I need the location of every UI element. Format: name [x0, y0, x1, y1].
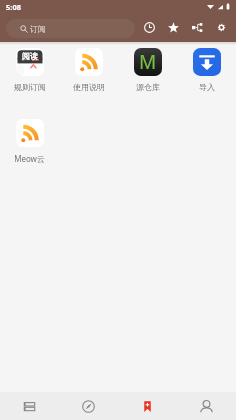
staticText: 源仓库	[136, 82, 160, 92]
staticText: M	[139, 49, 157, 75]
staticText: 导入	[199, 82, 215, 92]
button[interactable]: Settings	[209, 15, 233, 39]
staticText: 阅读	[22, 51, 38, 61]
button[interactable]: Favorites	[161, 15, 185, 39]
button[interactable]: 导入	[177, 42, 236, 113]
button[interactable]: Groups	[185, 15, 209, 39]
staticText: 订阅	[30, 24, 46, 34]
staticText: 使用说明	[73, 82, 105, 92]
button[interactable]: Bookshelf	[0, 392, 59, 420]
button[interactable]: Explore	[59, 392, 118, 420]
button[interactable]: Subscriptions	[118, 392, 177, 420]
staticText: Meow云	[14, 153, 45, 164]
button[interactable]: M	[118, 42, 177, 113]
staticText: 规则订阅	[14, 82, 46, 92]
button[interactable]: Profile	[177, 392, 236, 420]
button[interactable]: History	[137, 15, 161, 39]
button[interactable]: 订阅	[6, 19, 135, 38]
staticText: 5:08	[6, 2, 21, 12]
button[interactable]: Meow云	[0, 113, 59, 184]
button[interactable]: 阅读	[0, 42, 59, 113]
button[interactable]: 使用说明	[59, 42, 118, 113]
